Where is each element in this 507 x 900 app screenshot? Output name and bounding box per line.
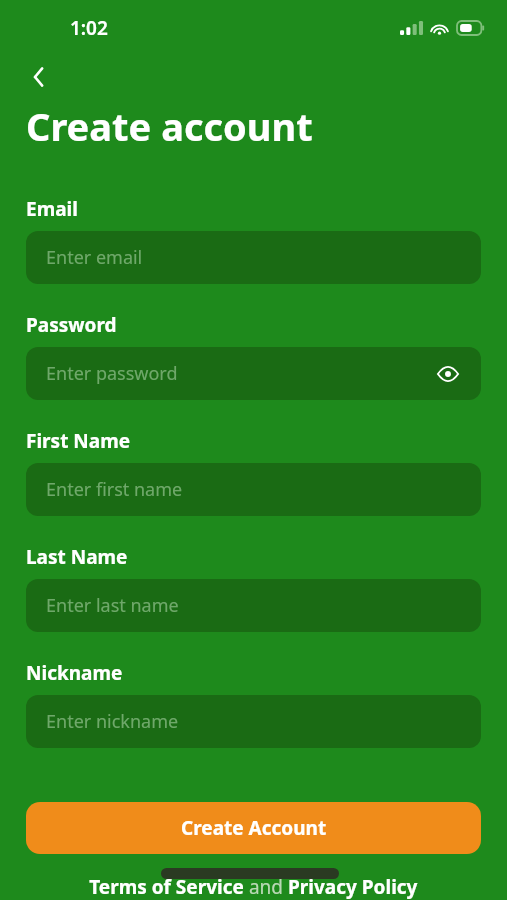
staticText: Enter password (46, 361, 178, 386)
staticText: Email (26, 196, 78, 222)
staticText: Enter email (46, 245, 143, 270)
staticText: Nickname (26, 660, 123, 686)
staticText: Enter last name (46, 593, 179, 618)
staticText: Enter nickname (46, 709, 179, 734)
staticText: First Name (26, 428, 131, 454)
button[interactable]: Enter first name (26, 463, 481, 516)
button[interactable]: Create Account (26, 802, 481, 854)
staticText: and (244, 874, 288, 900)
staticText: 1:02 (70, 15, 108, 41)
button[interactable]: Enter email (26, 231, 481, 284)
button[interactable]: Back (18, 56, 60, 98)
button[interactable]: Show password (433, 359, 463, 389)
button[interactable]: Enter nickname (26, 695, 481, 748)
button[interactable]: Privacy Policy (288, 874, 418, 900)
staticText: Create account (26, 100, 313, 152)
staticText: Password (26, 312, 117, 338)
staticText: Enter first name (46, 477, 183, 502)
button[interactable]: Terms of Service (89, 874, 244, 900)
staticText: Create Account (181, 815, 327, 841)
staticText: Last Name (26, 544, 128, 570)
button[interactable]: Enter last name (26, 579, 481, 632)
button[interactable]: Enter password (26, 347, 481, 400)
